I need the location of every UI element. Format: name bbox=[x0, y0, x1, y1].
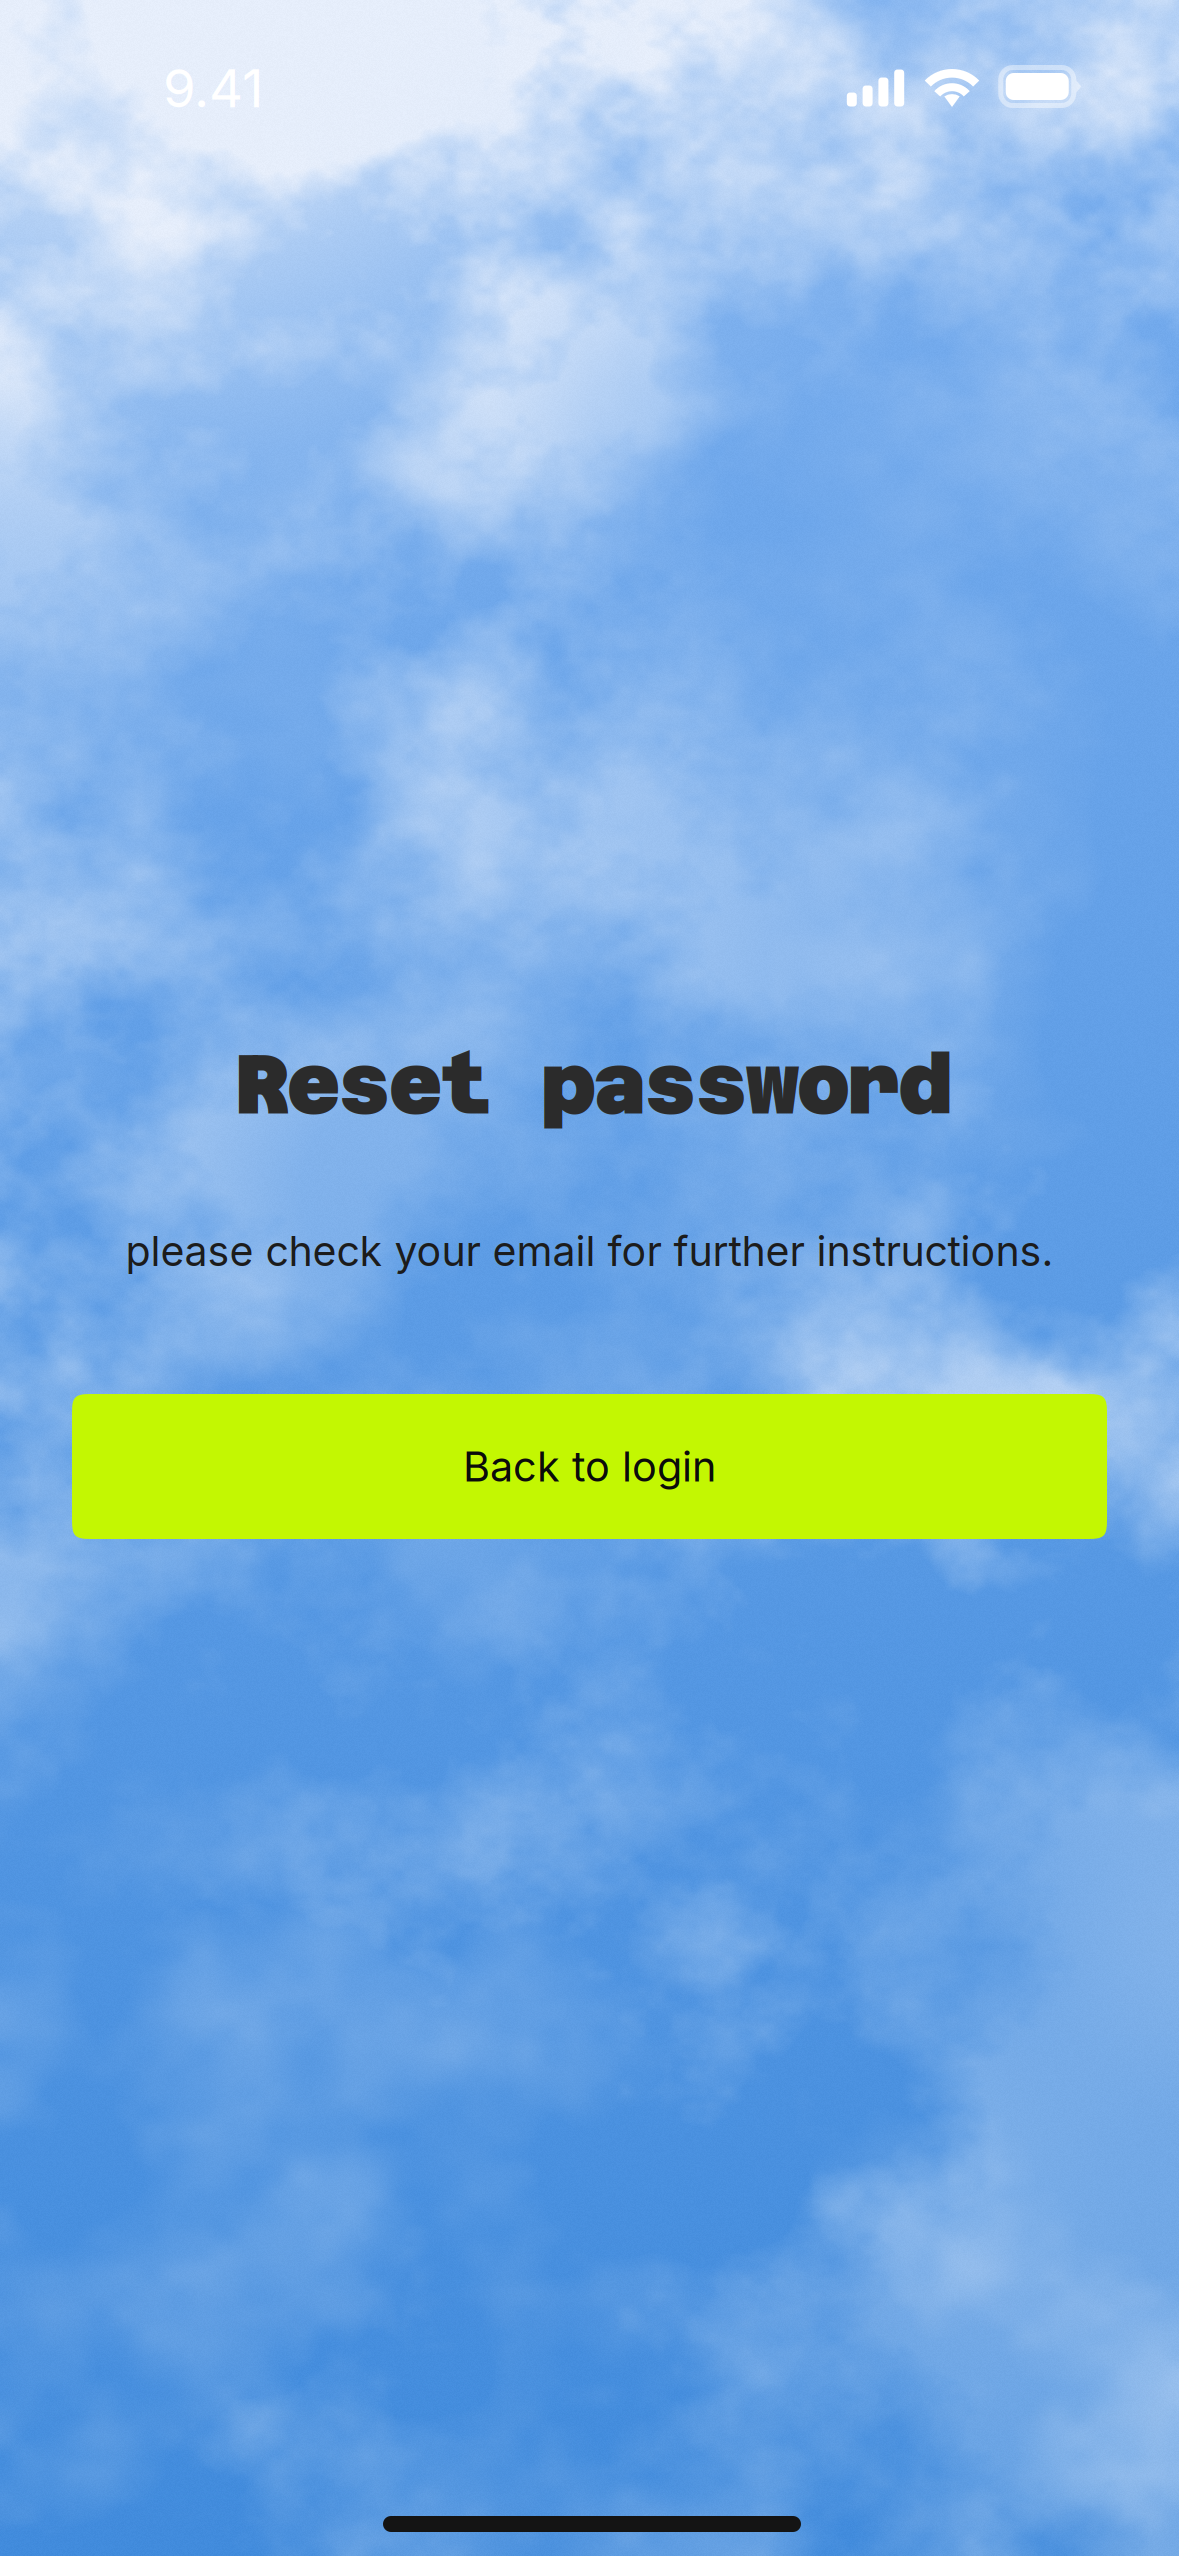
staticText: 9.41 bbox=[163, 56, 263, 120]
staticText: please check your email for further inst… bbox=[125, 1226, 1053, 1276]
staticText: Reset password bbox=[235, 1035, 952, 1133]
button[interactable]: Back to login bbox=[72, 1394, 1107, 1539]
staticText: Back to login bbox=[463, 1441, 716, 1491]
